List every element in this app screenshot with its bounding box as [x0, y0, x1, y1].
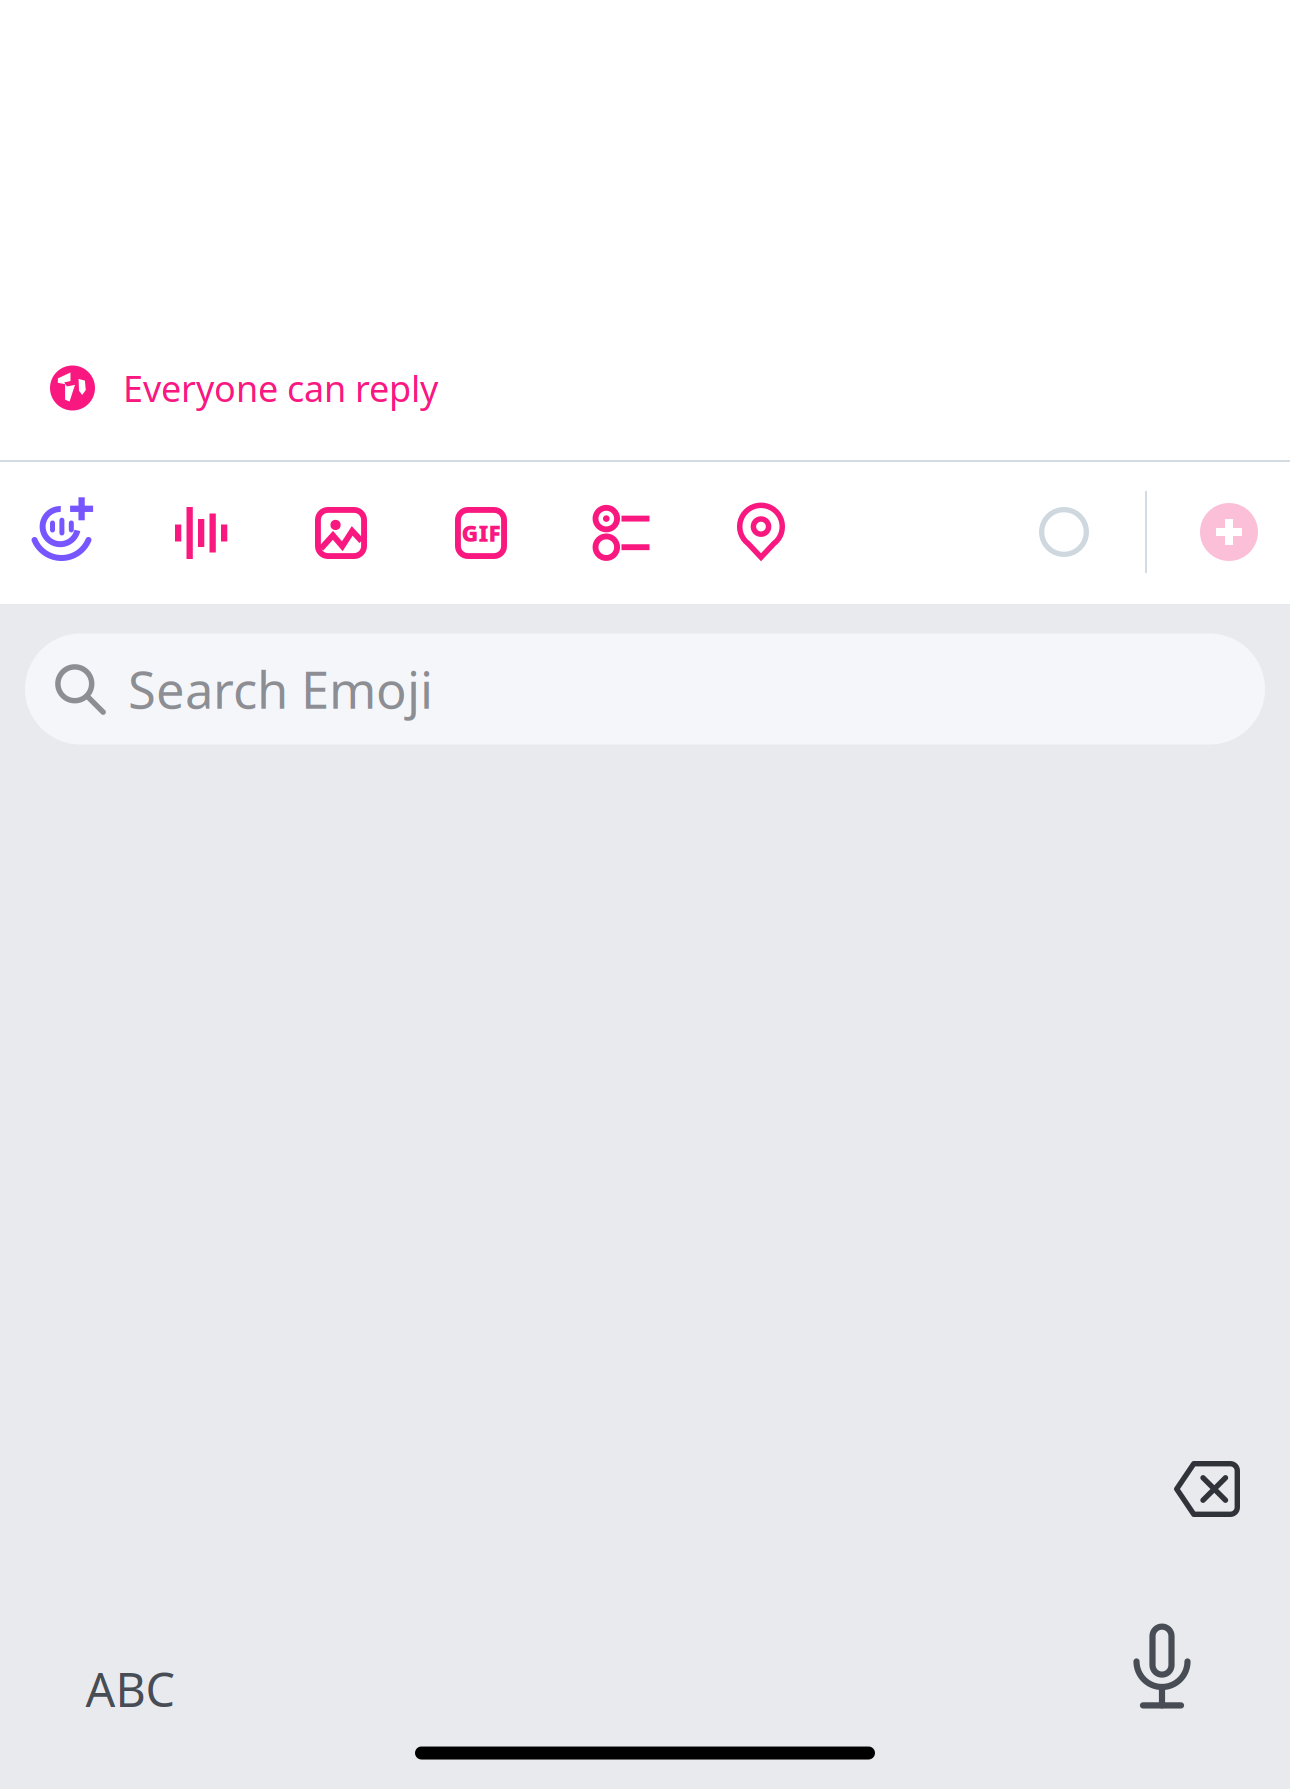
button[interactable]: Location	[702, 462, 820, 604]
button[interactable]: Poll	[562, 462, 680, 604]
button[interactable]: Media	[282, 462, 400, 604]
staticText: GIF	[461, 518, 500, 548]
button[interactable]: GIF	[422, 462, 540, 604]
button[interactable]: ABC	[35, 1629, 225, 1749]
button[interactable]: Dictate	[1087, 1606, 1237, 1726]
button[interactable]: Character count	[1009, 461, 1119, 603]
button[interactable]: Delete	[1132, 1429, 1282, 1549]
staticText: ABC	[85, 1658, 174, 1720]
staticText: Everyone can reply	[123, 364, 438, 412]
button[interactable]: Everyone can reply	[0, 340, 1290, 436]
button[interactable]: Search Emoji	[25, 633, 1265, 744]
staticText: Search Emoji	[128, 655, 433, 723]
button[interactable]: Add another post	[1174, 461, 1284, 603]
button[interactable]: Voice recording	[142, 462, 260, 604]
button[interactable]: Create sticker	[2, 462, 120, 604]
